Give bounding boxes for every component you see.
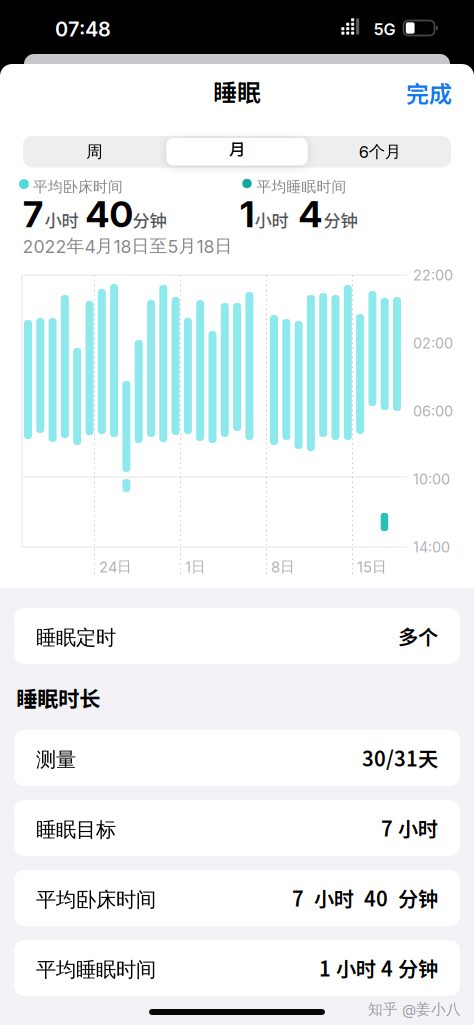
staticText: 10:00 xyxy=(413,470,450,488)
staticText: 14:00 xyxy=(413,538,450,556)
staticText: 1 小时 4 分钟 xyxy=(319,953,438,982)
staticText: 分钟 xyxy=(323,208,357,232)
staticText: 7 xyxy=(23,192,43,236)
staticText: 月 xyxy=(229,136,245,160)
staticText: 周 xyxy=(86,141,102,162)
staticText: 平均睡眠时间 xyxy=(36,957,156,982)
button[interactable]: 睡眠定时 xyxy=(14,608,460,664)
staticText: 1日 xyxy=(185,557,206,576)
staticText: 分钟 xyxy=(132,208,166,232)
staticText: 30/31天 xyxy=(362,743,438,772)
staticText: 40 xyxy=(85,192,133,236)
button[interactable]: 周 xyxy=(23,136,166,167)
staticText: 5G xyxy=(373,19,395,39)
button[interactable]: 6个月 xyxy=(308,136,451,167)
staticText: 24日 xyxy=(99,557,132,576)
staticText: 多个 xyxy=(398,621,438,650)
staticText: 睡眠定时 xyxy=(36,625,116,650)
staticText: 06:00 xyxy=(413,402,453,420)
staticText: 8日 xyxy=(271,557,295,576)
staticText: 睡眠时长 xyxy=(16,682,100,713)
staticText: 4 xyxy=(298,192,322,236)
staticText: 睡眠目标 xyxy=(36,817,116,842)
staticText: 02:00 xyxy=(413,334,453,352)
staticText: 6个月 xyxy=(359,141,401,162)
button[interactable]: 月 xyxy=(166,136,308,167)
staticText: 平均睡眠时间 xyxy=(256,177,346,196)
staticText: 7 小时 40 分钟 xyxy=(292,883,438,912)
staticText: 22:00 xyxy=(413,266,453,284)
staticText: 7 小时 xyxy=(381,813,438,842)
staticText: 小时 xyxy=(254,208,288,232)
staticText: 15日 xyxy=(357,557,387,576)
staticText: 睡眠 xyxy=(213,74,261,108)
staticText: 1 xyxy=(240,192,254,236)
staticText: 测量 xyxy=(36,747,76,772)
staticText: 完成 xyxy=(406,76,452,109)
staticText: 平均卧床时间 xyxy=(33,177,123,196)
staticText: 2022年4月18日至5月18日 xyxy=(22,235,232,257)
staticText: 07:48 xyxy=(55,17,111,41)
staticText: 小时 xyxy=(44,208,78,232)
staticText: 知乎 @姜小八 xyxy=(368,1000,461,1018)
staticText: 平均卧床时间 xyxy=(36,887,156,912)
button[interactable]: 完成 xyxy=(406,76,452,109)
